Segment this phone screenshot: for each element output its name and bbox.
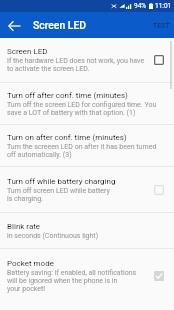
staticText: Pocket mode [7,259,54,268]
staticText: Turn off screen LED while battery is cha… [7,187,110,203]
staticText: Screen LED [7,47,48,56]
staticText: Turn off while battery charging [7,177,116,186]
staticText: TEST [153,22,170,30]
button[interactable]: Pocket mode [0,249,174,302]
staticText: Turn on after conf. time (minutes) [7,133,127,142]
staticText: Turn the screeen LED on after it has bee… [7,143,157,159]
button[interactable]: Back [0,12,28,38]
staticText: Blink rate [7,222,41,231]
button[interactable]: Turn off after conf. time (minutes) [0,83,174,124]
staticText: in seconds (Continuous light) [7,232,99,240]
staticText: Turn off after conf. time (minutes) [7,91,128,100]
staticText: 11:01 [155,2,172,10]
staticText: If the hardware LED does not work, you h… [7,57,145,73]
button[interactable]: Turn on after conf. time (minutes) [0,125,174,166]
button[interactable]: TEST [146,15,174,35]
staticText: Screen LED [33,19,87,31]
button[interactable]: Screen LED [0,38,174,82]
button[interactable]: Blink rate [0,213,174,248]
staticText: Turn off the screen LED for configured t… [7,101,157,117]
button[interactable]: Screen LED [143,38,174,82]
button[interactable]: Turn off while battery charging [0,167,174,212]
staticText: Battery saving: If enabled, all notifica… [7,269,137,293]
staticText: 94% [134,2,147,10]
button[interactable]: Pocket mode [143,249,174,302]
button[interactable]: Turn off while battery charging [143,167,174,212]
